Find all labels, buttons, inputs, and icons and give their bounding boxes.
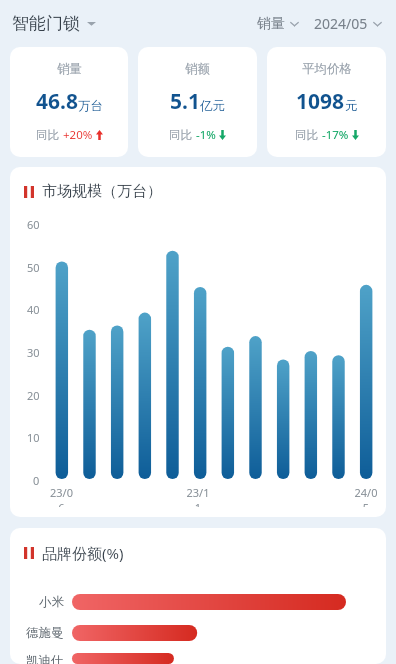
staticText: 10 bbox=[27, 430, 40, 442]
button[interactable]: 品牌份额(%) bbox=[10, 528, 386, 565]
staticText: 销额 bbox=[185, 61, 210, 77]
staticText: 销量 bbox=[257, 15, 285, 33]
button[interactable]: 德施曼 bbox=[10, 622, 386, 644]
staticText: -1% bbox=[196, 127, 216, 143]
staticText: 同比 bbox=[295, 128, 318, 142]
staticText: +20% bbox=[63, 127, 93, 143]
staticText: 智能门锁 bbox=[12, 13, 80, 34]
staticText: 德施曼 bbox=[26, 625, 64, 641]
staticText: 凯迪仕 bbox=[26, 653, 64, 664]
button[interactable]: 凯迪仕 bbox=[10, 653, 386, 664]
staticText: 元 bbox=[345, 98, 358, 114]
button[interactable]: 2024/05 bbox=[314, 10, 382, 37]
button[interactable]: 销额 bbox=[138, 47, 257, 157]
button[interactable]: 销量 bbox=[10, 47, 128, 157]
staticText: 销量 bbox=[57, 61, 82, 77]
staticText: 60 bbox=[27, 217, 40, 229]
staticText: 小米 bbox=[39, 594, 64, 610]
other: Select category bbox=[87, 19, 96, 28]
staticText: 平均价格 bbox=[302, 61, 352, 77]
staticText: 万台 bbox=[78, 98, 103, 114]
button[interactable]: 销量 bbox=[257, 11, 299, 37]
staticText: 46.8 bbox=[36, 87, 78, 116]
button[interactable]: 平均价格 bbox=[267, 47, 386, 157]
staticText: 50 bbox=[27, 260, 40, 272]
staticText: 5.1 bbox=[170, 87, 200, 116]
staticText: 亿元 bbox=[200, 98, 225, 114]
button[interactable]: 智能门锁 bbox=[12, 9, 96, 38]
staticText: 1098 bbox=[296, 87, 345, 116]
button[interactable]: 市场规模（万台） bbox=[10, 167, 386, 203]
staticText: 0 bbox=[33, 473, 40, 485]
staticText: 品牌份额(%) bbox=[42, 543, 124, 563]
button[interactable]: 小米 bbox=[10, 591, 386, 613]
staticText: 24/05 bbox=[352, 485, 380, 507]
staticText: 2024/05 bbox=[314, 14, 368, 33]
staticText: 40 bbox=[27, 302, 40, 314]
staticText: 20 bbox=[27, 388, 40, 400]
staticText: 同比 bbox=[169, 128, 192, 142]
staticText: -17% bbox=[322, 127, 349, 143]
staticText: 23/11 bbox=[184, 485, 212, 507]
staticText: 30 bbox=[27, 345, 40, 357]
staticText: 同比 bbox=[36, 128, 59, 142]
staticText: 23/06 bbox=[48, 485, 75, 507]
staticText: 市场规模（万台） bbox=[42, 182, 162, 201]
